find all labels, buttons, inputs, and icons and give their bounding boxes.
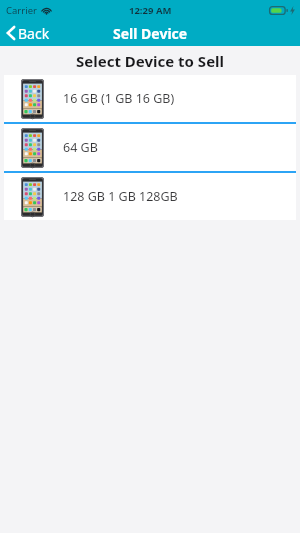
staticText: 128 GB 1 GB 128GB xyxy=(63,188,178,205)
other: iPhone xyxy=(21,128,44,168)
staticText: Back xyxy=(18,24,50,43)
button[interactable]: iPhone xyxy=(4,124,296,171)
staticText: Sell Device xyxy=(113,24,188,43)
button[interactable]: Back xyxy=(0,20,60,46)
button[interactable]: iPhone xyxy=(4,173,296,220)
staticText: Select Device to Sell xyxy=(76,51,225,71)
staticText: 64 GB xyxy=(63,139,98,156)
other: iPhone xyxy=(21,79,44,119)
staticText: Carrier xyxy=(6,4,37,17)
button[interactable]: iPhone xyxy=(4,75,296,122)
staticText: 16 GB (1 GB 16 GB) xyxy=(63,90,175,107)
staticText: 12:29 AM xyxy=(129,4,172,17)
other: iPhone xyxy=(21,177,44,217)
